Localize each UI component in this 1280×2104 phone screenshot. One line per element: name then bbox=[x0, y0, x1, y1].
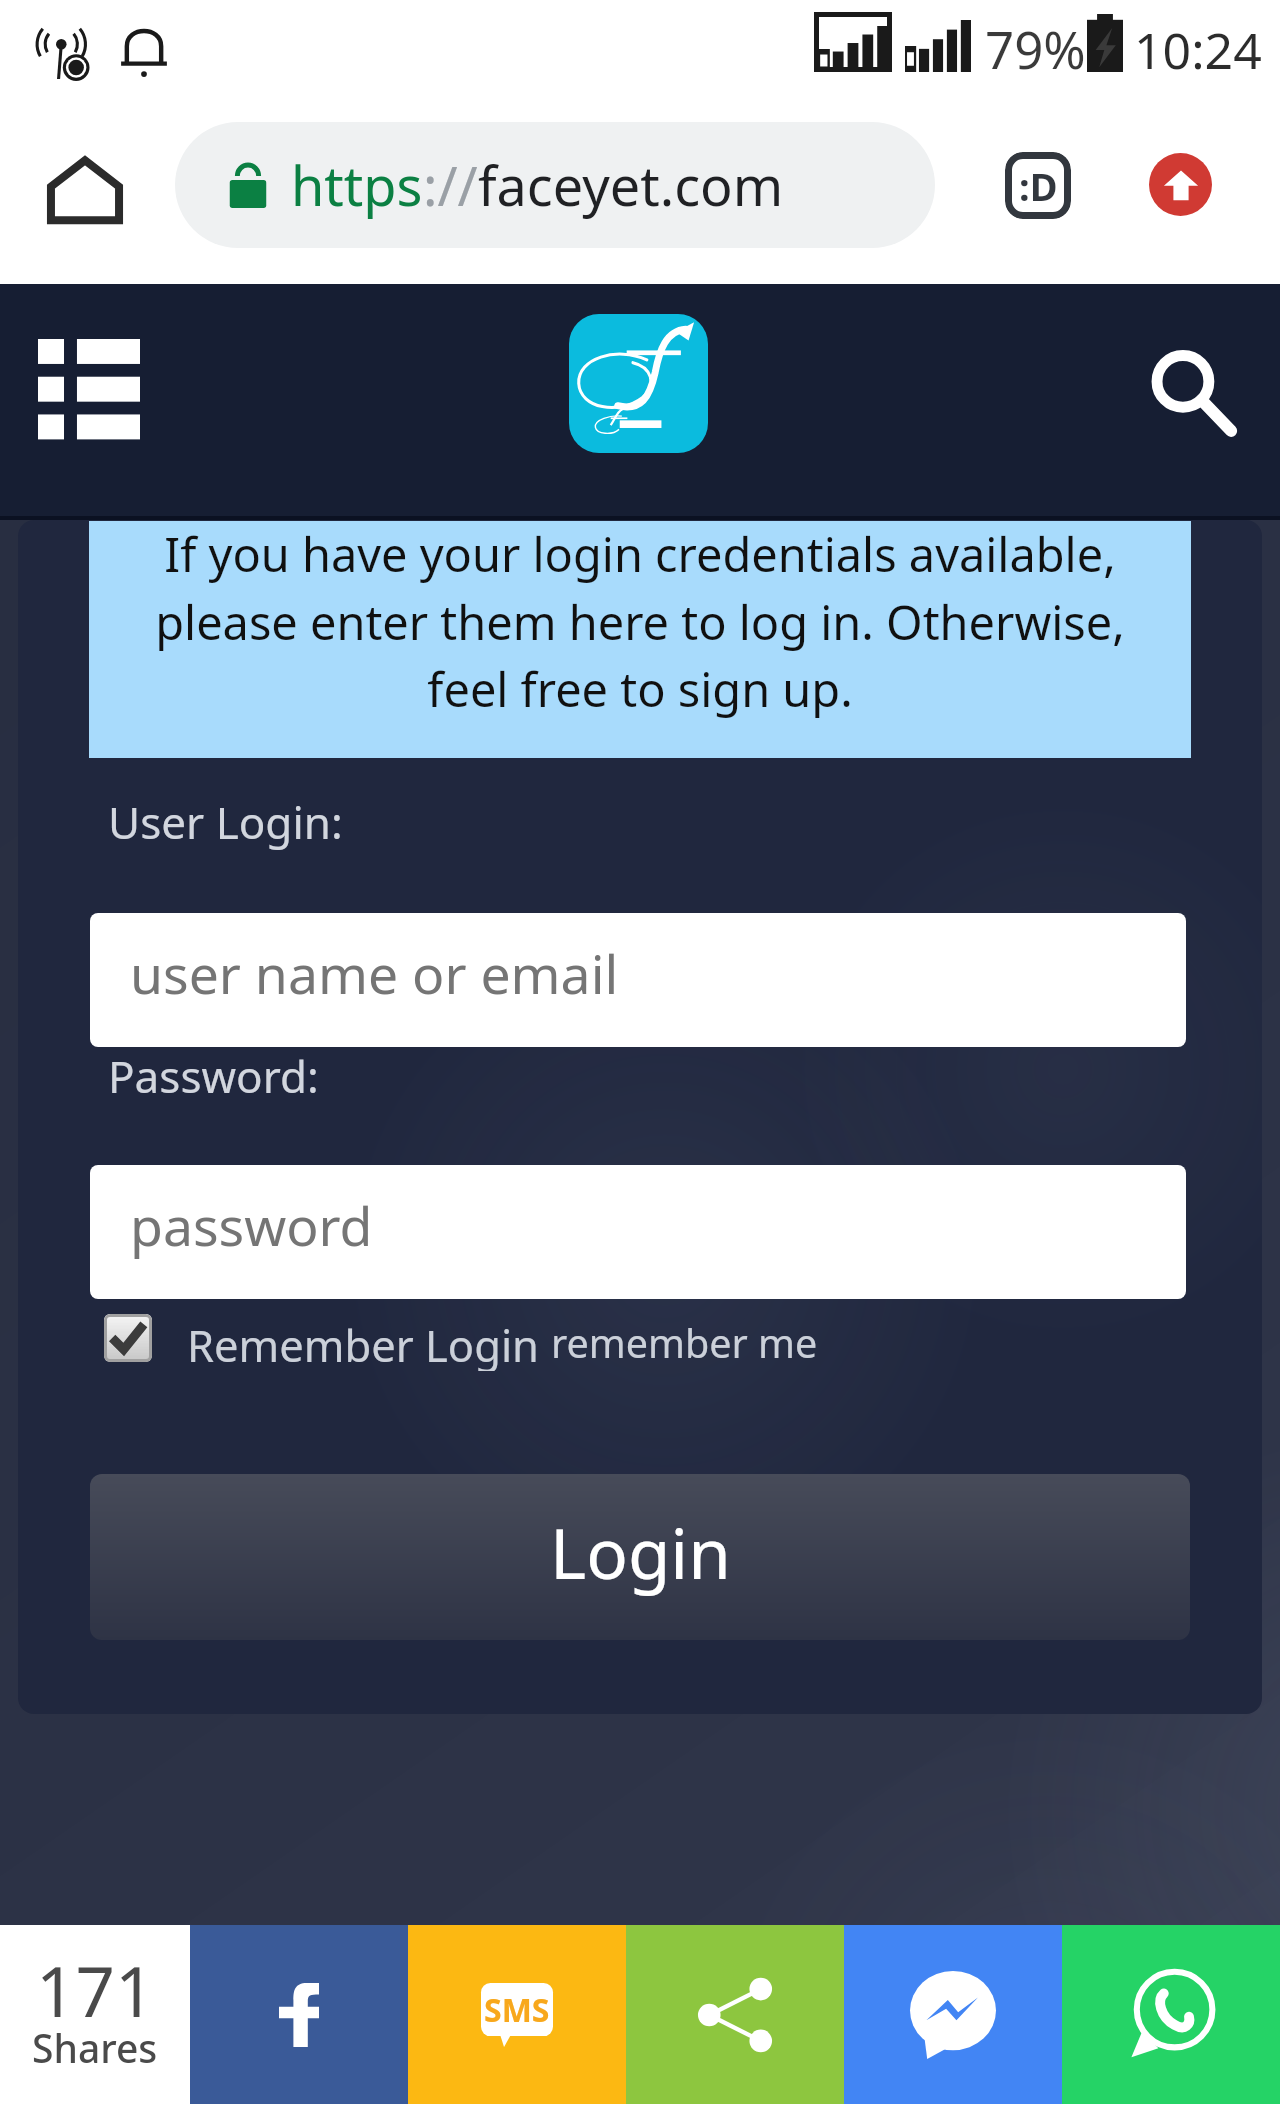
button[interactable]: Share by SMS bbox=[408, 1925, 626, 2104]
staticText: password bbox=[130, 1189, 373, 1262]
staticText: Shares bbox=[32, 2021, 158, 2074]
staticText: :// bbox=[423, 148, 478, 222]
staticText: 79% bbox=[985, 14, 1086, 83]
button[interactable]: Share on Facebook bbox=[190, 1925, 408, 2104]
staticText: user name or email bbox=[130, 937, 619, 1010]
staticText: Remember Login bbox=[187, 1315, 551, 1371]
button[interactable]: Share on Messenger bbox=[844, 1925, 1062, 2104]
staticText: :D bbox=[1019, 160, 1058, 212]
button[interactable]: user name or email bbox=[90, 913, 1186, 1047]
button[interactable]: Search bbox=[1135, 341, 1255, 446]
button[interactable]: Menu bbox=[25, 332, 153, 446]
staticText: 171 bbox=[36, 1943, 155, 2037]
staticText: Password: bbox=[108, 1046, 319, 1106]
staticText: If you have your login credentials avail… bbox=[89, 522, 1191, 720]
staticText: remember me bbox=[551, 1316, 818, 1370]
button[interactable]: https bbox=[175, 122, 935, 248]
button[interactable]: Share bbox=[626, 1925, 844, 2104]
staticText: 10:24 bbox=[1134, 16, 1262, 84]
button[interactable]: password bbox=[90, 1165, 1186, 1299]
button[interactable]: Upload bbox=[1133, 137, 1227, 231]
staticText: SMS bbox=[484, 1988, 550, 2032]
staticText: https bbox=[291, 148, 423, 222]
staticText: faceyet.com bbox=[478, 148, 784, 222]
staticText: Login bbox=[550, 1505, 731, 1599]
button[interactable]: Share on WhatsApp bbox=[1062, 1925, 1280, 2104]
button[interactable]: Login bbox=[90, 1474, 1190, 1640]
button[interactable]: Faceyet home bbox=[569, 314, 708, 453]
button[interactable]: Home bbox=[47, 152, 123, 228]
staticText: User Login: bbox=[108, 792, 343, 852]
button[interactable]: Reader mode bbox=[988, 135, 1088, 235]
button[interactable]: Remember Login bbox=[104, 1310, 818, 1366]
